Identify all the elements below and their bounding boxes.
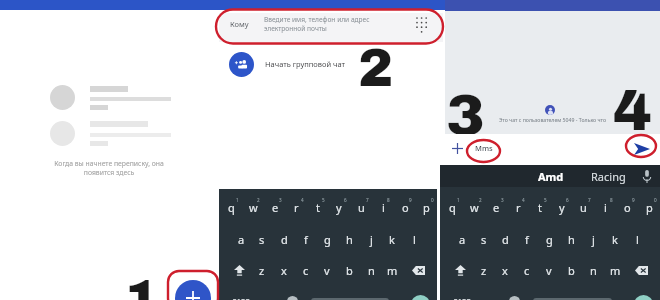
button[interactable]: Backspace — [410, 262, 426, 278]
button[interactable]: i — [594, 193, 616, 221]
staticText: Введите имя, телефон или адрес электронн… — [264, 15, 429, 33]
button[interactable]: v — [538, 256, 560, 284]
button[interactable]: g — [316, 225, 338, 253]
staticText: v — [546, 263, 552, 278]
staticText: 8 — [387, 197, 390, 203]
button[interactable]: p — [415, 193, 437, 221]
button[interactable]: d — [273, 225, 295, 253]
button[interactable]: y — [551, 193, 573, 221]
button[interactable]: l — [403, 225, 425, 253]
button[interactable]: Enter — [634, 295, 653, 300]
button[interactable]: e — [485, 193, 507, 221]
button[interactable]: x — [494, 256, 516, 284]
button[interactable]: t — [307, 193, 329, 221]
button[interactable]: s — [251, 225, 273, 253]
staticText: h — [346, 232, 353, 247]
button[interactable]: Enter — [411, 295, 430, 300]
button[interactable]: c — [295, 256, 317, 284]
button[interactable]: f — [295, 225, 317, 253]
button[interactable]: Start chat — [175, 280, 211, 300]
button[interactable]: i — [372, 193, 394, 221]
button[interactable]: f — [516, 225, 538, 253]
staticText: 7 — [366, 197, 369, 203]
button[interactable]: r — [507, 193, 529, 221]
button[interactable]: Shift — [231, 262, 247, 278]
staticText: e — [272, 200, 279, 215]
button[interactable]: a — [230, 225, 252, 253]
button[interactable]: k — [381, 225, 403, 253]
staticText: c — [303, 263, 309, 278]
staticText: h — [568, 232, 575, 247]
button[interactable]: j — [582, 225, 604, 253]
button[interactable]: Space — [311, 298, 389, 300]
staticText: 1 — [124, 270, 160, 300]
staticText: q — [228, 200, 235, 215]
button[interactable]: h — [560, 225, 582, 253]
button[interactable]: y — [328, 193, 350, 221]
button[interactable]: o — [616, 193, 638, 221]
button[interactable]: ?123 — [454, 297, 472, 300]
button[interactable]: p — [638, 193, 660, 221]
button[interactable]: z — [251, 256, 273, 284]
button[interactable]: Voice input — [639, 168, 655, 184]
button[interactable]: v — [316, 256, 338, 284]
staticText: w — [470, 200, 479, 215]
button[interactable]: e — [264, 193, 286, 221]
button[interactable]: j — [360, 225, 382, 253]
button[interactable]: Emoji — [509, 296, 520, 300]
button[interactable]: Backspace — [633, 262, 649, 278]
button[interactable]: q — [220, 193, 242, 221]
button[interactable]: Начать групповой чат — [213, 48, 445, 80]
staticText: 1 — [457, 197, 460, 203]
button[interactable]: ?123 — [233, 297, 251, 300]
button[interactable]: Mms — [473, 140, 495, 156]
button[interactable]: n — [360, 256, 382, 284]
staticText: 4 — [613, 79, 652, 142]
button[interactable]: Attach — [448, 139, 466, 157]
staticText: g — [324, 232, 331, 247]
button[interactable]: k — [604, 225, 626, 253]
button[interactable]: c — [516, 256, 538, 284]
staticText: d — [502, 232, 509, 247]
button[interactable]: Amd — [534, 167, 568, 185]
button[interactable]: b — [560, 256, 582, 284]
button[interactable]: Shift — [452, 262, 468, 278]
button[interactable]: s — [473, 225, 495, 253]
button[interactable]: u — [350, 193, 372, 221]
button[interactable]: x — [273, 256, 295, 284]
button[interactable]: o — [394, 193, 416, 221]
staticText: s — [481, 232, 487, 247]
staticText: r — [516, 200, 521, 215]
button[interactable]: Emoji — [287, 296, 298, 300]
staticText: f — [304, 232, 308, 247]
button[interactable]: w — [463, 193, 485, 221]
button[interactable]: a — [451, 225, 473, 253]
button[interactable]: Send — [631, 138, 653, 160]
button[interactable]: h — [338, 225, 360, 253]
button[interactable]: Racing — [589, 167, 627, 185]
button[interactable]: g — [538, 225, 560, 253]
button[interactable]: q — [441, 193, 463, 221]
button[interactable]: w — [242, 193, 264, 221]
staticText: 6 — [566, 197, 569, 203]
staticText: 3 — [446, 84, 485, 147]
button[interactable]: r — [285, 193, 307, 221]
staticText: n — [368, 263, 375, 278]
button[interactable]: u — [572, 193, 594, 221]
button[interactable]: m — [604, 256, 626, 284]
button[interactable]: m — [381, 256, 403, 284]
staticText: z — [259, 263, 265, 278]
staticText: f — [525, 232, 529, 247]
button[interactable]: l — [626, 225, 648, 253]
staticText: 9 — [409, 197, 412, 203]
button[interactable]: d — [494, 225, 516, 253]
staticText: t — [316, 200, 320, 215]
button[interactable]: Space — [533, 298, 612, 300]
button[interactable]: n — [582, 256, 604, 284]
button[interactable]: b — [338, 256, 360, 284]
button[interactable]: z — [473, 256, 495, 284]
staticText: 7 — [588, 197, 591, 203]
button[interactable]: Кому — [219, 13, 443, 42]
staticText: Кому — [230, 19, 249, 29]
button[interactable]: t — [529, 193, 551, 221]
